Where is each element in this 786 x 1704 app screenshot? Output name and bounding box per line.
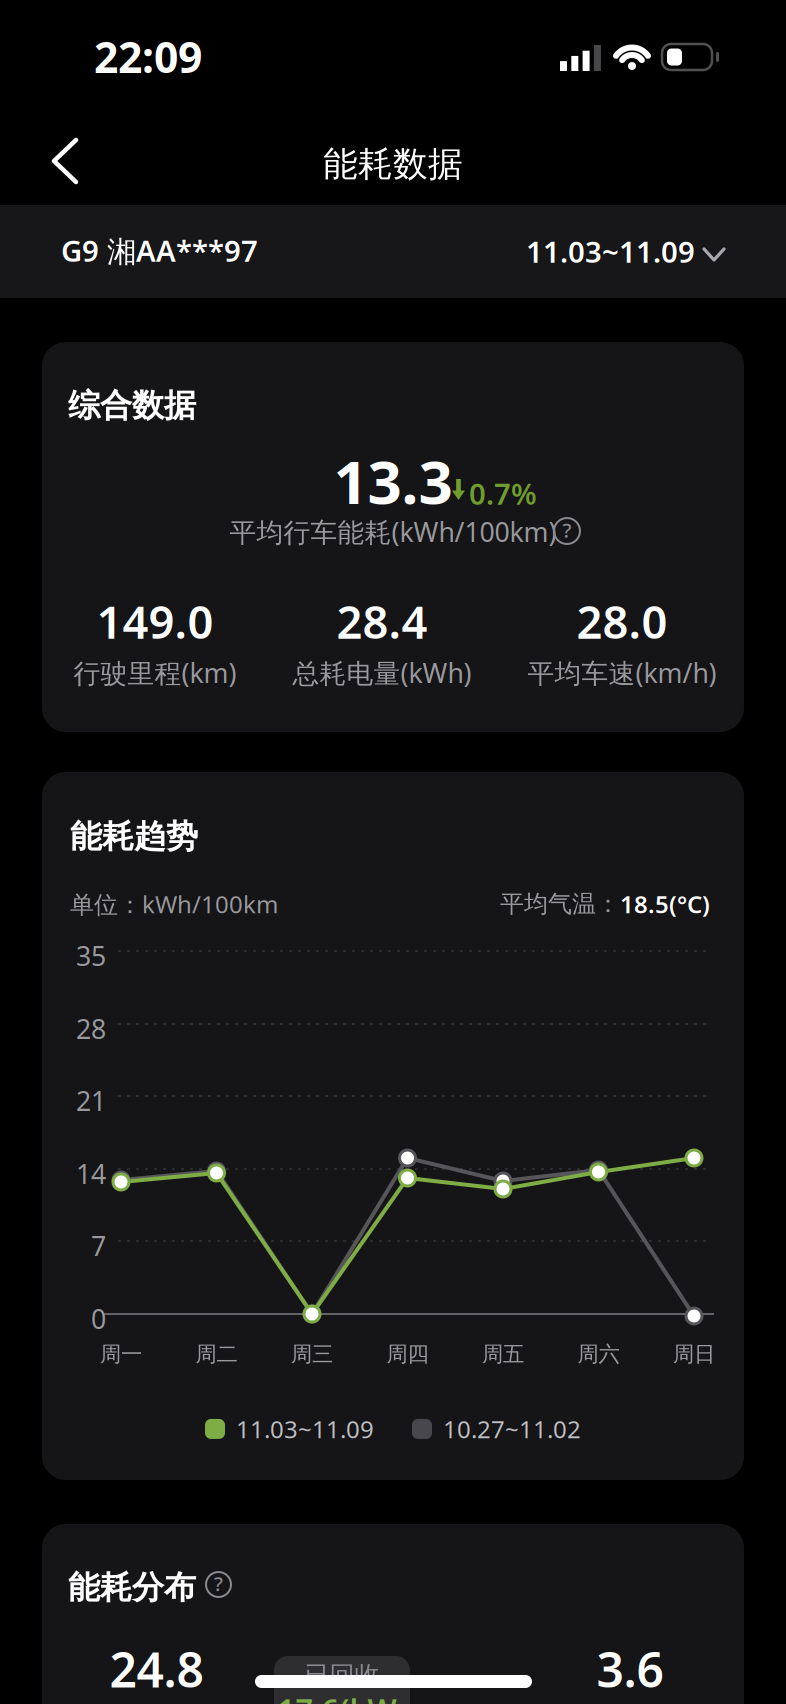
staticText: 行驶里程(km) bbox=[73, 655, 236, 690]
staticText: 周日 bbox=[673, 1341, 715, 1367]
staticText: 28 bbox=[76, 1011, 106, 1046]
staticText: 22:09 bbox=[94, 28, 202, 85]
staticText: 0.7% bbox=[469, 474, 537, 513]
staticText: 3.6 bbox=[596, 1637, 663, 1701]
staticText: 已回收 bbox=[304, 1660, 379, 1691]
staticText: 28.0 bbox=[576, 591, 667, 651]
staticText: 18.5(°C) bbox=[620, 888, 710, 920]
staticText: 0 bbox=[91, 1301, 106, 1336]
staticText: 17.6(kWh) bbox=[277, 1689, 406, 1704]
staticText: 28.4 bbox=[336, 591, 427, 651]
staticText: 周三 bbox=[291, 1341, 333, 1367]
staticText: 能耗分布 bbox=[68, 1568, 196, 1607]
staticText: 周六 bbox=[577, 1341, 619, 1367]
button[interactable]: 平均行车能耗说明 bbox=[554, 518, 580, 544]
staticText: 14 bbox=[76, 1156, 106, 1191]
staticText: 能耗趋势 bbox=[70, 817, 198, 856]
staticText: 平均车速(km/h) bbox=[527, 655, 716, 690]
staticText: 13.3 bbox=[333, 441, 452, 521]
staticText: 平均行车能耗(kWh/100km) bbox=[229, 514, 556, 549]
staticText: 周一 bbox=[100, 1341, 142, 1367]
staticText: 11.03~11.09 bbox=[526, 232, 695, 271]
staticText: 35 bbox=[76, 938, 106, 973]
staticText: 能耗数据 bbox=[323, 143, 463, 186]
staticText: ? bbox=[562, 517, 571, 543]
button[interactable]: G9 湘AA***97 bbox=[0, 205, 786, 298]
staticText: G9 湘AA***97 bbox=[61, 231, 258, 270]
staticText: 平均气温： bbox=[500, 889, 620, 919]
staticText: 总耗电量(kWh) bbox=[292, 655, 471, 690]
staticText: 综合数据 bbox=[68, 386, 196, 425]
staticText: 周四 bbox=[386, 1341, 428, 1367]
button[interactable]: Back bbox=[0, 0, 100, 194]
staticText: 7 bbox=[91, 1228, 106, 1263]
staticText: 11.03~11.09 bbox=[236, 1413, 374, 1445]
staticText: 单位：kWh/100km bbox=[70, 888, 278, 920]
staticText: 10.27~11.02 bbox=[443, 1413, 581, 1445]
staticText: 149.0 bbox=[96, 591, 213, 651]
button[interactable]: 能耗分布说明 bbox=[206, 1572, 231, 1597]
staticText: 周五 bbox=[482, 1341, 524, 1367]
staticText: 周二 bbox=[195, 1341, 237, 1367]
staticText: 24.8 bbox=[109, 1637, 203, 1701]
staticText: ? bbox=[214, 1570, 223, 1597]
staticText: 21 bbox=[76, 1083, 106, 1118]
